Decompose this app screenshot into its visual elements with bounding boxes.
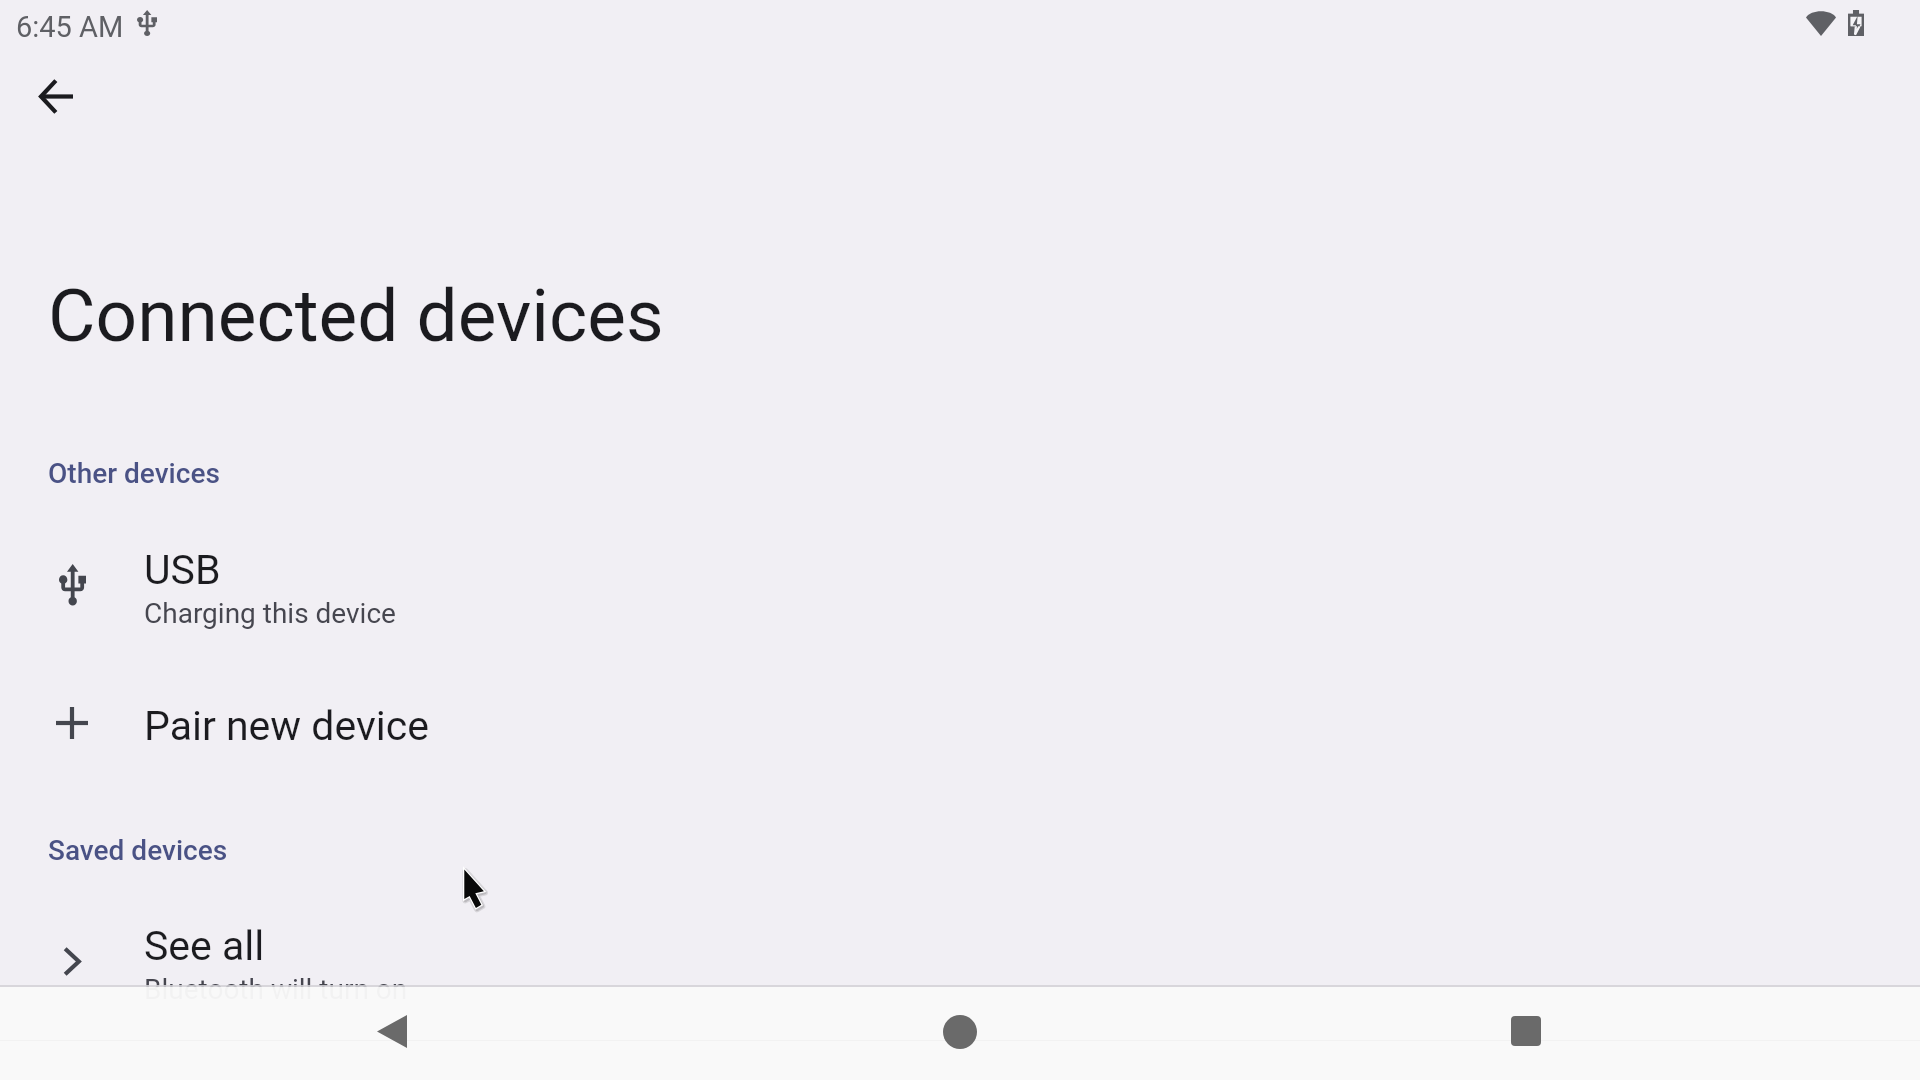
button[interactable]: Pair new device bbox=[0, 668, 1920, 783]
button[interactable]: Back bbox=[360, 999, 424, 1063]
staticText: Charging this device bbox=[144, 597, 396, 630]
staticText: See all bbox=[144, 922, 265, 970]
staticText: Bluetooth will turn on bbox=[144, 973, 408, 1006]
staticText: USB bbox=[144, 546, 221, 594]
button[interactable]: Home bbox=[943, 1015, 977, 1049]
button[interactable]: Recent apps bbox=[1494, 999, 1558, 1063]
staticText: 6:45 AM bbox=[16, 10, 124, 44]
staticText: Saved devices bbox=[48, 834, 228, 867]
button[interactable]: Navigate up bbox=[24, 64, 88, 128]
staticText: Connected devices bbox=[48, 273, 664, 359]
button[interactable]: See all bbox=[0, 900, 1920, 1028]
staticText: Pair new device bbox=[144, 702, 429, 750]
staticText: Other devices bbox=[48, 457, 220, 490]
button[interactable]: USB bbox=[0, 524, 1920, 652]
